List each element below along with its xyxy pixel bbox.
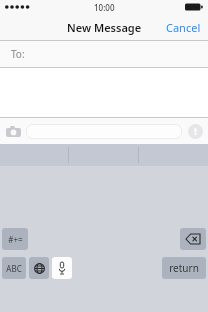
staticText: New Message: [67, 20, 142, 35]
button[interactable]: [26, 124, 182, 139]
staticText: return: [169, 261, 199, 275]
button[interactable]: #+=: [2, 228, 28, 250]
button[interactable]: Camera: [0, 118, 26, 144]
staticText: 10:00: [94, 2, 115, 13]
staticText: ABC: [6, 263, 22, 274]
staticText: Cancel: [166, 20, 201, 35]
button[interactable]: Record audio: [182, 118, 208, 144]
staticText: To:: [11, 47, 25, 61]
button[interactable]: Dictate: [52, 257, 72, 279]
button[interactable]: To:: [0, 41, 208, 67]
staticText: #+=: [8, 234, 23, 245]
button[interactable]: Cancel: [159, 14, 208, 40]
button[interactable]: Change keyboard: [29, 257, 49, 279]
button[interactable]: ABC: [2, 257, 26, 279]
button[interactable]: return: [162, 257, 206, 279]
button[interactable]: Backspace: [180, 228, 206, 250]
